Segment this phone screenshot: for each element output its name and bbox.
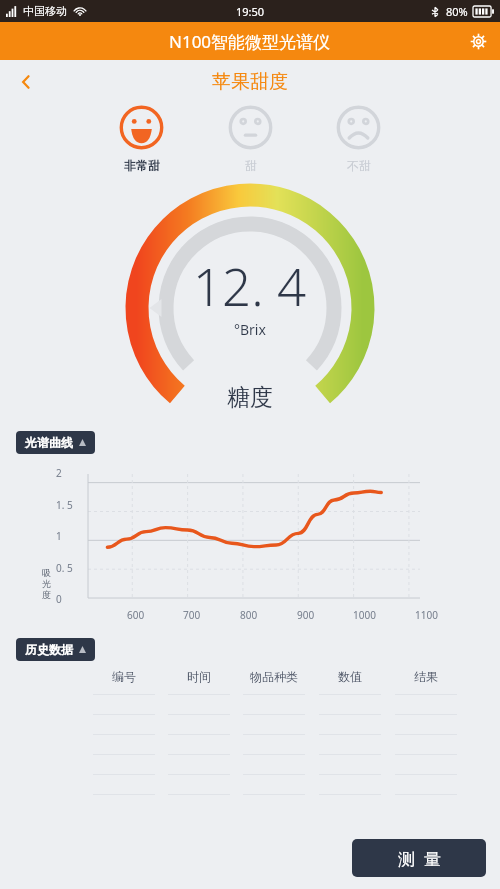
staticText: 结果 xyxy=(414,669,438,684)
staticText: 甜 xyxy=(245,158,257,173)
staticText: 光谱曲线 xyxy=(25,435,73,450)
staticText: 数值 xyxy=(338,669,362,684)
button[interactable]: 不甜 xyxy=(335,104,382,173)
button[interactable]: Settings xyxy=(461,24,495,58)
staticText: 度 xyxy=(42,589,51,600)
staticText: 0 xyxy=(56,592,62,606)
staticText: 不甜 xyxy=(347,158,371,173)
staticText: 苹果甜度 xyxy=(212,70,288,94)
button[interactable]: 非常甜 xyxy=(118,104,165,173)
staticText: 900 xyxy=(297,608,315,622)
staticText: 吸 xyxy=(42,567,51,578)
button[interactable]: 历史数据 xyxy=(16,638,95,661)
staticText: 糖度 xyxy=(227,383,273,412)
staticText: 测 量 xyxy=(398,847,441,870)
staticText: 编号 xyxy=(112,669,136,684)
staticText: 0. 5 xyxy=(56,561,73,575)
staticText: 19:50 xyxy=(236,4,265,19)
staticText: 1. 5 xyxy=(56,498,73,512)
staticText: 中国移动 xyxy=(23,4,67,18)
staticText: 1 xyxy=(56,529,62,543)
staticText: °Brix xyxy=(234,320,266,339)
button[interactable]: 光谱曲线 xyxy=(16,431,95,454)
staticText: 光 xyxy=(42,578,51,589)
staticText: 80% xyxy=(446,4,468,19)
staticText: 物品种类 xyxy=(250,669,298,684)
staticText: 700 xyxy=(183,608,201,622)
button[interactable]: 测 量 xyxy=(352,839,486,877)
staticText: 非常甜 xyxy=(124,158,160,173)
staticText: 时间 xyxy=(187,669,211,684)
staticText: N100智能微型光谱仪 xyxy=(169,30,331,53)
staticText: 2 xyxy=(56,466,62,480)
staticText: 12. 4 xyxy=(193,251,307,320)
staticText: 1100 xyxy=(415,608,438,622)
button[interactable]: 甜 xyxy=(227,104,274,173)
staticText: 800 xyxy=(240,608,258,622)
staticText: 历史数据 xyxy=(25,642,73,657)
button[interactable]: Back xyxy=(8,64,44,100)
staticText: 1000 xyxy=(353,608,376,622)
staticText: 600 xyxy=(127,608,145,622)
